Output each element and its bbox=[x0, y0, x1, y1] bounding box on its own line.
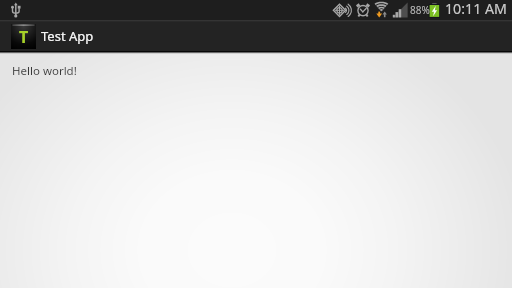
staticText: 10:11 AM bbox=[445, 0, 507, 18]
staticText: Hello world! bbox=[12, 63, 77, 79]
button[interactable]: Test App, home bbox=[0, 20, 512, 51]
staticText: T bbox=[19, 26, 29, 48]
staticText: 88% bbox=[410, 3, 430, 17]
staticText: Test App bbox=[41, 27, 94, 45]
